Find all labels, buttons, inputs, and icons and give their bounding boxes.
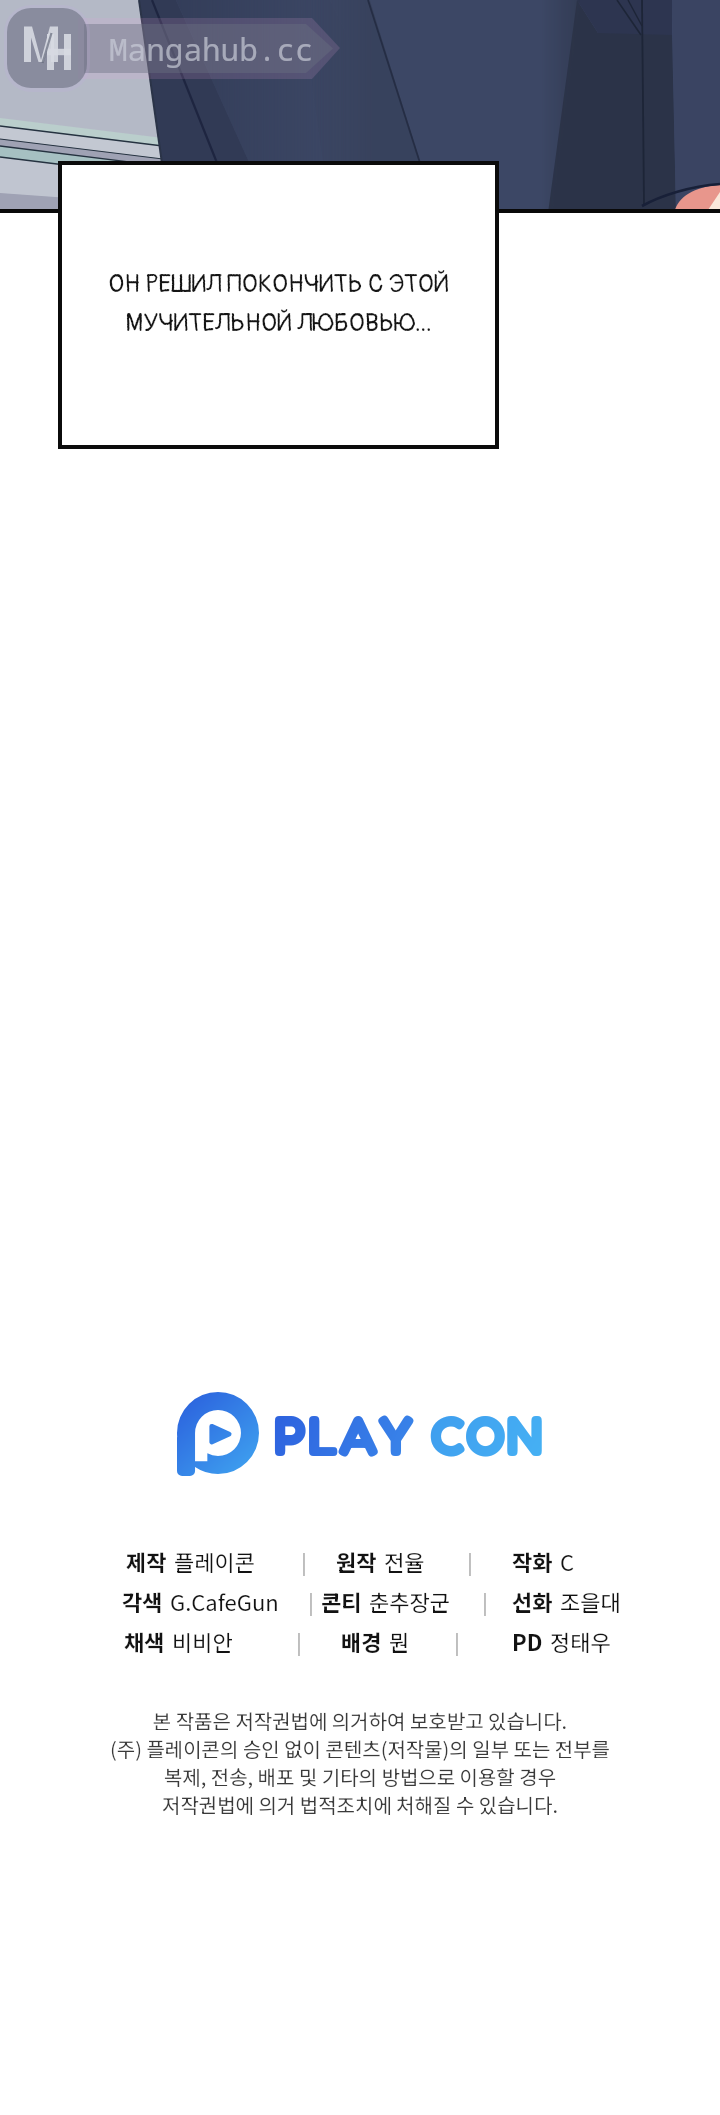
staticText: 본 작품은 저작권법에 의거하여 보호받고 있습니다. (주) 플레이콘의 승인…: [110, 1706, 610, 1819]
staticText: 콘티: [321, 1585, 362, 1616]
button[interactable]: PLAY CON home: [177, 1392, 544, 1476]
staticText: 비비안: [172, 1625, 233, 1656]
staticText: 정태우: [550, 1625, 611, 1656]
staticText: 전율: [384, 1545, 425, 1576]
button[interactable]: Mangahub logo: [0, 0, 720, 2115]
staticText: |: [301, 1545, 307, 1576]
staticText: 선화: [512, 1585, 553, 1616]
staticText: |: [467, 1545, 473, 1576]
staticText: 채색: [124, 1625, 165, 1656]
staticText: 각색: [122, 1585, 163, 1616]
staticText: 뭔: [389, 1625, 410, 1656]
staticText: C: [560, 1545, 575, 1576]
staticText: 춘추장군: [369, 1585, 450, 1616]
staticText: 배경: [341, 1625, 382, 1656]
staticText: CON: [430, 1400, 544, 1468]
staticText: 작화: [512, 1545, 553, 1576]
staticText: |: [482, 1585, 488, 1616]
button[interactable]: Mangahub logo: [7, 8, 87, 88]
staticText: PLAY: [273, 1400, 414, 1468]
staticText: 플레이콘: [174, 1545, 255, 1576]
staticText: |: [308, 1585, 314, 1616]
staticText: ОН РЕШИЛ ПОКОНЧИТЬ С ЭТОЙ МУЧИТЕЛЬНОЙ ЛЮ…: [108, 269, 449, 339]
staticText: 원작: [336, 1545, 377, 1576]
staticText: G.CafeGun: [170, 1585, 279, 1616]
staticText: 조을대: [560, 1585, 621, 1616]
staticText: 제작: [126, 1545, 167, 1576]
staticText: |: [454, 1625, 460, 1656]
staticText: PD: [512, 1625, 543, 1656]
staticText: |: [296, 1625, 302, 1656]
staticText: Mangahub.cc: [109, 28, 314, 70]
